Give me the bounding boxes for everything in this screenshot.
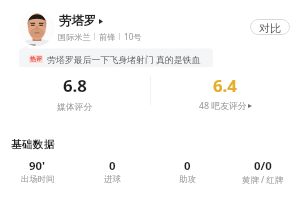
staticText: 国际米兰	[58, 32, 91, 42]
button[interactable]: 国际米兰	[58, 31, 142, 42]
staticText: 0	[109, 158, 116, 174]
staticText: 前锋	[99, 32, 116, 42]
staticText: 助攻	[179, 174, 196, 185]
staticText: 10号	[124, 31, 142, 42]
staticText: 对比	[259, 21, 281, 35]
staticText: 48 吧友评分	[199, 100, 247, 112]
staticText: 媒体评分	[57, 102, 93, 113]
staticText: 劳塔罗最后一下飞身堵射门 真的是铁血	[47, 53, 201, 65]
staticText: 6.4	[213, 74, 237, 97]
button[interactable]: Player photo	[19, 10, 55, 46]
button[interactable]: 0	[150, 158, 225, 185]
staticText: 热评	[30, 55, 42, 63]
button[interactable]: 0/0	[225, 158, 300, 185]
button[interactable]: 90'	[0, 158, 75, 185]
staticText: 0	[184, 158, 191, 174]
staticText: 进球	[104, 174, 121, 185]
staticText: 劳塔罗	[59, 13, 97, 29]
button[interactable]: 6.4	[150, 74, 300, 112]
button[interactable]: 对比	[250, 19, 290, 35]
button[interactable]: 6.8	[0, 74, 150, 113]
button[interactable]: 热评	[19, 46, 213, 67]
staticText: 出场时间	[21, 174, 55, 185]
staticText: 6.8	[63, 74, 87, 97]
button[interactable]: 基础数据	[11, 138, 55, 151]
staticText: 90'	[29, 158, 46, 174]
button[interactable]: 劳塔罗	[59, 13, 103, 29]
staticText: 0/0	[254, 158, 272, 174]
staticText: 黄牌 / 红牌	[242, 174, 284, 185]
button[interactable]: 0	[75, 158, 150, 185]
